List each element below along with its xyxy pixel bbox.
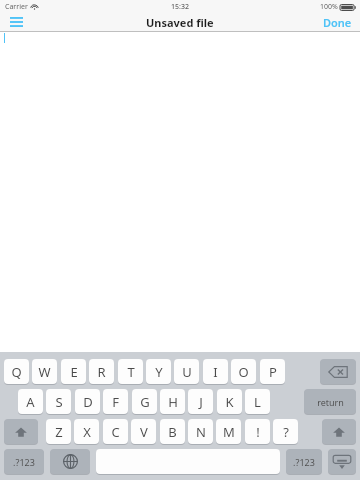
- staticText: U: [182, 363, 192, 381]
- staticText: O: [238, 363, 249, 381]
- button[interactable]: U: [174, 359, 199, 384]
- staticText: Unsaved file: [146, 15, 214, 30]
- button[interactable]: F: [103, 389, 128, 414]
- button[interactable]: Z: [46, 419, 71, 444]
- staticText: I: [213, 363, 218, 381]
- staticText: D: [83, 393, 93, 411]
- staticText: W: [38, 363, 51, 381]
- staticText: return: [317, 396, 344, 408]
- button[interactable]: A: [18, 389, 43, 414]
- button[interactable]: T: [118, 359, 143, 384]
- button[interactable]: W: [32, 359, 57, 384]
- button[interactable]: Hide keyboard: [328, 449, 356, 474]
- staticText: R: [97, 363, 106, 381]
- staticText: 15:32: [171, 2, 189, 12]
- button[interactable]: N: [188, 419, 213, 444]
- staticText: K: [225, 393, 234, 411]
- staticText: M: [223, 423, 235, 441]
- button[interactable]: J: [188, 389, 213, 414]
- staticText: J: [199, 393, 203, 411]
- staticText: Z: [55, 423, 63, 441]
- button[interactable]: I: [203, 359, 228, 384]
- staticText: C: [111, 423, 120, 441]
- button[interactable]: !: [245, 419, 270, 444]
- staticText: V: [140, 423, 148, 441]
- staticText: 100%: [320, 2, 338, 12]
- button[interactable]: ?: [273, 419, 298, 444]
- staticText: N: [196, 423, 206, 441]
- staticText: X: [83, 423, 91, 441]
- button[interactable]: P: [260, 359, 285, 384]
- button[interactable]: V: [131, 419, 156, 444]
- button[interactable]: E: [61, 359, 86, 384]
- staticText: T: [127, 363, 135, 381]
- button[interactable]: M: [216, 419, 241, 444]
- button[interactable]: Next keyboard: [50, 449, 90, 474]
- button[interactable]: K: [217, 389, 242, 414]
- staticText: !: [256, 423, 260, 441]
- button[interactable]: Q: [4, 359, 29, 384]
- button[interactable]: G: [132, 389, 157, 414]
- staticText: F: [112, 393, 119, 411]
- staticText: L: [254, 393, 261, 411]
- button[interactable]: R: [89, 359, 114, 384]
- staticText: ?: [283, 423, 289, 441]
- staticText: A: [26, 393, 35, 411]
- staticText: Y: [155, 363, 163, 381]
- staticText: E: [70, 363, 78, 381]
- staticText: B: [168, 423, 177, 441]
- staticText: Carrier: [5, 2, 28, 12]
- staticText: .?123: [293, 456, 315, 468]
- staticText: P: [269, 363, 277, 381]
- button[interactable]: Shift: [322, 419, 356, 444]
- button[interactable]: L: [245, 389, 270, 414]
- staticText: H: [168, 393, 178, 411]
- staticText: Q: [11, 363, 22, 381]
- button[interactable]: O: [231, 359, 256, 384]
- staticText: S: [55, 393, 63, 411]
- staticText: .?123: [13, 456, 35, 468]
- button[interactable]: .?123: [286, 449, 322, 474]
- button[interactable]: B: [160, 419, 185, 444]
- button[interactable]: return: [304, 389, 356, 414]
- button[interactable]: Shift: [4, 419, 38, 444]
- button[interactable]: H: [160, 389, 185, 414]
- button[interactable]: Done: [319, 13, 356, 31]
- button[interactable]: .?123: [4, 449, 44, 474]
- button[interactable]: C: [103, 419, 128, 444]
- button[interactable]: Y: [146, 359, 171, 384]
- staticText: G: [140, 393, 150, 411]
- button[interactable]: X: [74, 419, 99, 444]
- button[interactable]: S: [46, 389, 71, 414]
- button[interactable]: D: [75, 389, 100, 414]
- staticText: Done: [323, 15, 352, 29]
- button[interactable]: Backspace: [320, 359, 356, 384]
- button[interactable]: Menu: [3, 13, 29, 31]
